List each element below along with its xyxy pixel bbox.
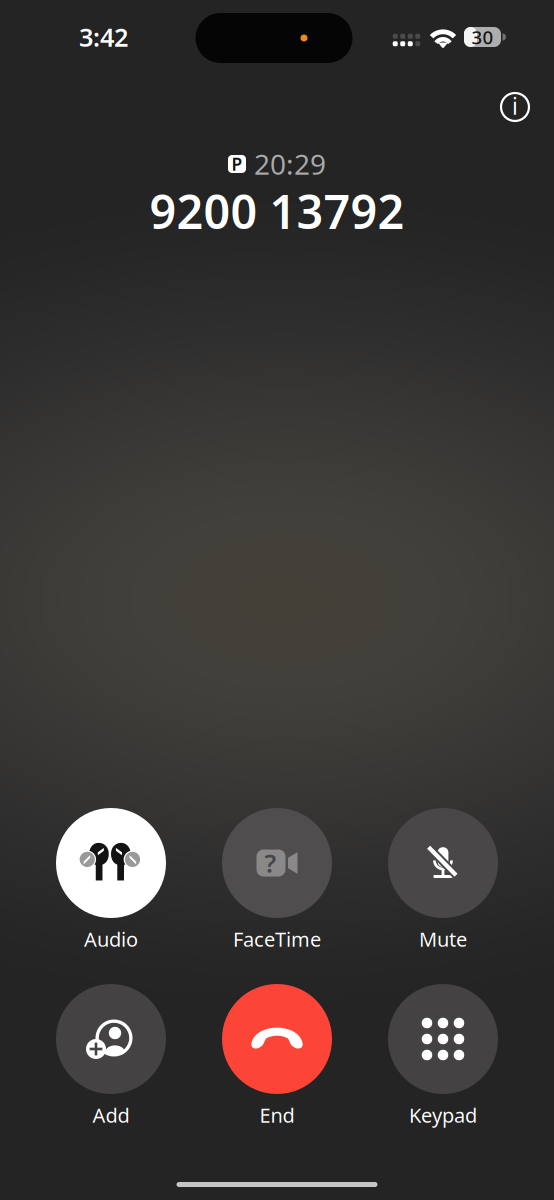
- staticText: i: [512, 91, 518, 121]
- button[interactable]: Audio: [28, 808, 194, 949]
- staticText: End: [259, 1102, 294, 1128]
- button[interactable]: Call details: [493, 85, 537, 129]
- staticText: Mute: [419, 926, 467, 952]
- staticText: 20:29: [254, 145, 326, 183]
- button[interactable]: Mute: [360, 808, 526, 949]
- staticText: FaceTime: [233, 926, 321, 952]
- button[interactable]: End: [194, 984, 360, 1125]
- button[interactable]: ?: [194, 808, 360, 949]
- button[interactable]: Add: [28, 984, 194, 1125]
- staticText: P: [231, 152, 242, 175]
- staticText: Audio: [84, 926, 138, 952]
- staticText: Add: [92, 1102, 129, 1128]
- staticText: ?: [264, 846, 276, 880]
- staticText: Keypad: [409, 1102, 477, 1128]
- staticText: 9200 13792: [149, 180, 404, 242]
- staticText: 3:42: [79, 20, 128, 54]
- staticText: 30: [471, 25, 493, 49]
- button[interactable]: Keypad: [360, 984, 526, 1125]
